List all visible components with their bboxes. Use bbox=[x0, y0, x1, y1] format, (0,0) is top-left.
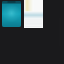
button[interactable]: Content screen preview bbox=[24, 0, 43, 28]
button[interactable]: Splash screen preview bbox=[2, 1, 21, 27]
